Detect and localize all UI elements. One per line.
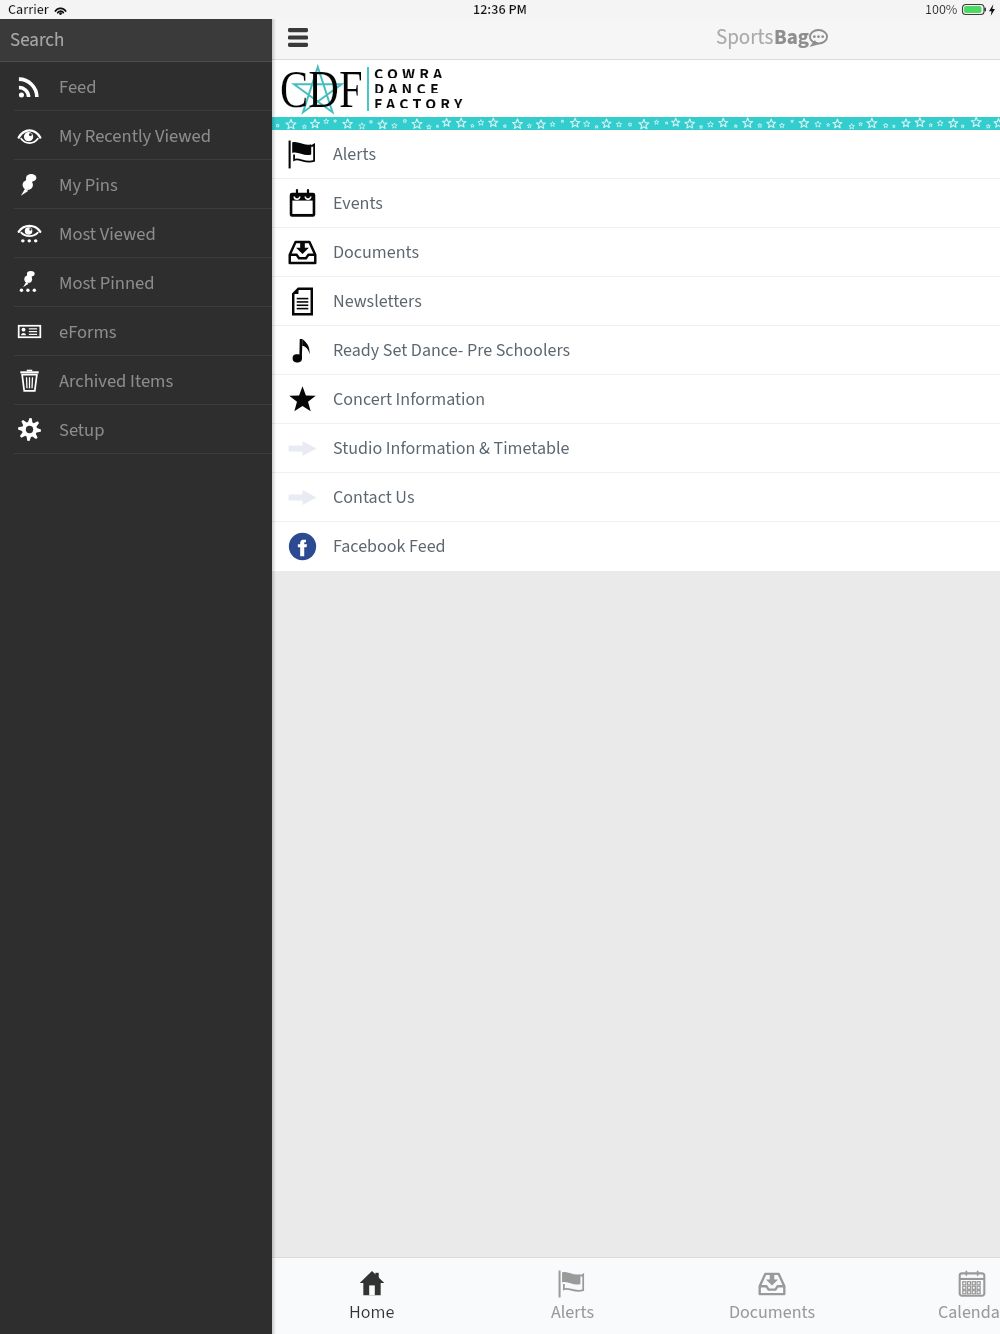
button[interactable]: Alerts (272, 130, 1000, 179)
button[interactable]: Documents (672, 1258, 872, 1334)
button[interactable]: Ready Set Dance- Pre Schoolers (272, 326, 1000, 375)
staticText: Concert Information (333, 387, 486, 413)
staticText: Calendar (938, 1300, 1000, 1326)
staticText: Archived Items (59, 368, 174, 394)
button[interactable]: Alerts (472, 1258, 672, 1334)
staticText: eForms (59, 319, 117, 345)
staticText: Events (333, 191, 383, 217)
staticText: FACTORY (374, 93, 467, 108)
button[interactable]: Documents (272, 228, 1000, 277)
button[interactable]: Home (272, 1258, 472, 1334)
staticText: COWRA (374, 63, 447, 78)
staticText: Home (349, 1300, 395, 1326)
staticText: Contact Us (333, 485, 415, 511)
staticText: My Recently Viewed (59, 123, 211, 149)
staticText: Most Viewed (59, 221, 156, 247)
staticText: Facebook Feed (333, 534, 446, 560)
staticText: Feed (59, 74, 97, 100)
staticText: 12:36 PM (473, 0, 527, 19)
button[interactable]: Most Viewed (0, 209, 272, 258)
staticText: Setup (59, 417, 105, 443)
staticText: Studio Information & Timetable (333, 436, 570, 462)
button[interactable]: Newsletters (272, 277, 1000, 326)
button[interactable]: Feed (0, 62, 272, 111)
staticText: CDF (280, 60, 363, 117)
button[interactable]: Events (272, 179, 1000, 228)
button[interactable]: eForms (0, 307, 272, 356)
staticText: Documents (333, 240, 419, 266)
staticText: Search (10, 27, 65, 54)
staticText: Ready Set Dance- Pre Schoolers (333, 338, 571, 364)
button[interactable]: Search (0, 19, 272, 61)
staticText: Documents (729, 1300, 815, 1326)
staticText: Newsletters (333, 289, 422, 315)
staticText: Alerts (333, 142, 376, 168)
button[interactable]: Calendar (872, 1258, 1000, 1334)
button[interactable]: Studio Information & Timetable (272, 424, 1000, 473)
staticText: DANCE (374, 78, 443, 93)
button[interactable]: Concert Information (272, 375, 1000, 424)
staticText: Most Pinned (59, 270, 155, 296)
button[interactable]: My Recently Viewed (0, 111, 272, 160)
staticText: My Pins (59, 172, 118, 198)
button[interactable]: Archived Items (0, 356, 272, 405)
button[interactable]: Setup (0, 405, 272, 454)
button[interactable]: My Pins (0, 160, 272, 209)
staticText: 100% (925, 0, 958, 19)
button[interactable]: Open navigation menu (280, 19, 316, 55)
staticText: Bag (774, 22, 809, 52)
staticText: Sports (716, 22, 774, 52)
button[interactable]: Contact Us (272, 473, 1000, 522)
staticText: Carrier (8, 0, 49, 19)
staticText: Alerts (551, 1300, 594, 1326)
button[interactable]: Most Pinned (0, 258, 272, 307)
button[interactable]: Facebook Feed (272, 522, 1000, 571)
